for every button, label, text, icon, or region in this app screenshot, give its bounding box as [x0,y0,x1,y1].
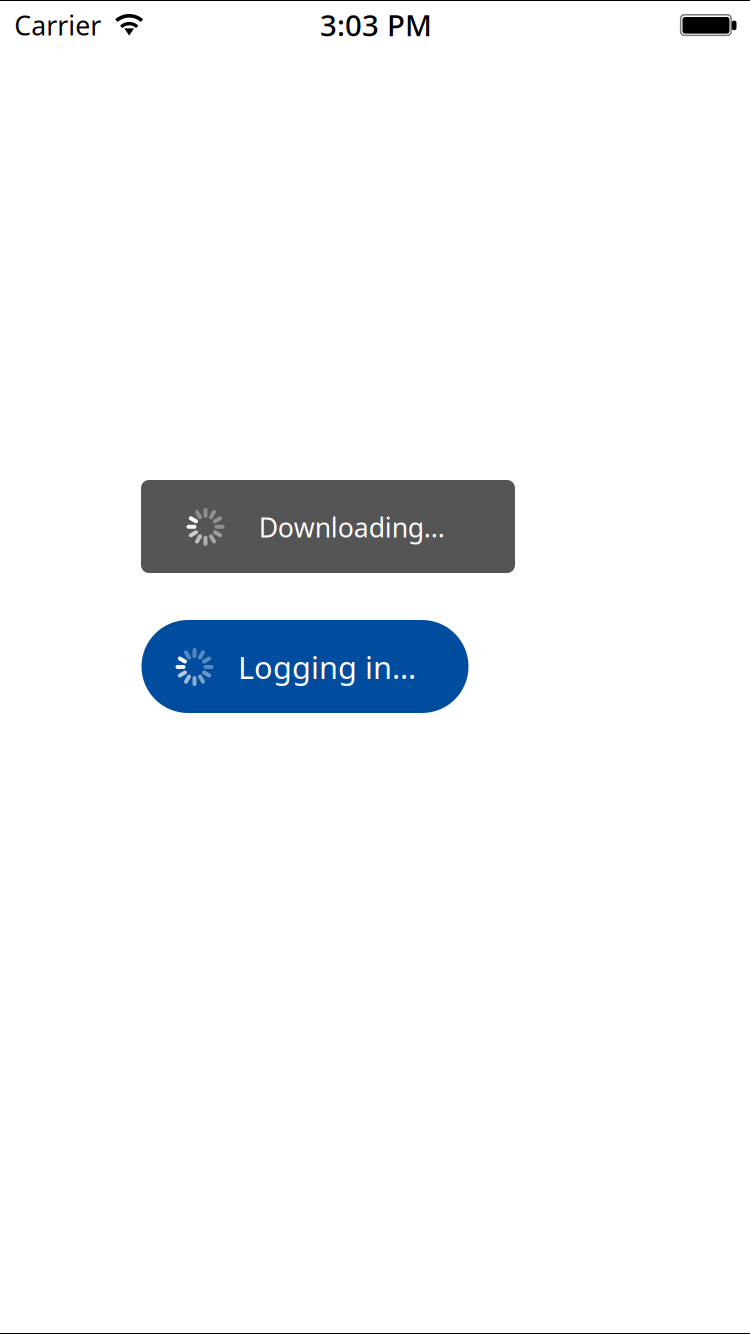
staticText: Downloading... [259,509,445,545]
staticText: Carrier [14,7,101,43]
button[interactable]: Downloading... [141,480,515,573]
staticText: Logging in... [238,647,416,687]
staticText: 3:03 PM [320,5,432,44]
button[interactable]: Logging in... [141,620,468,713]
